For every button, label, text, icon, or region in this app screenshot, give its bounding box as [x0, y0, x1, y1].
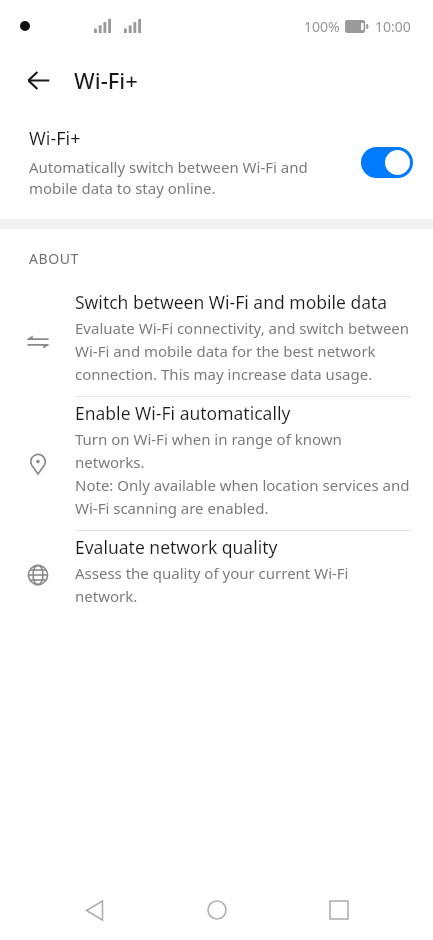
- staticText: Evaluate network quality: [75, 535, 278, 559]
- staticText: ABOUT: [29, 249, 79, 268]
- button[interactable]: Evaluate network quality: [0, 531, 433, 618]
- staticText: Switch between Wi-Fi and mobile data: [75, 290, 388, 314]
- staticText: Wi-Fi+: [29, 126, 81, 151]
- button[interactable]: Switch between Wi-Fi and mobile data: [0, 286, 433, 397]
- staticText: 10:00: [375, 17, 411, 36]
- button[interactable]: Wi-Fi+: [0, 108, 433, 219]
- staticText: Wi-Fi+: [74, 65, 138, 95]
- button[interactable]: Enable Wi-Fi automatically: [0, 397, 433, 531]
- button[interactable]: Recents: [311, 882, 367, 938]
- staticText: Automatically switch between Wi-Fi and m…: [29, 157, 329, 199]
- staticText: Enable Wi-Fi automatically: [75, 401, 291, 425]
- staticText: 100%: [304, 17, 340, 36]
- button[interactable]: Back: [14, 56, 62, 104]
- button[interactable]: Wi-Fi+ toggle: [361, 147, 413, 178]
- staticText: Assess the quality of your current Wi-Fi…: [75, 563, 411, 606]
- staticText: Evaluate Wi-Fi connectivity, and switch …: [75, 318, 411, 384]
- staticText: Turn on Wi-Fi when in range of known net…: [75, 429, 411, 518]
- button[interactable]: Home: [189, 882, 245, 938]
- button[interactable]: Back: [66, 882, 122, 938]
